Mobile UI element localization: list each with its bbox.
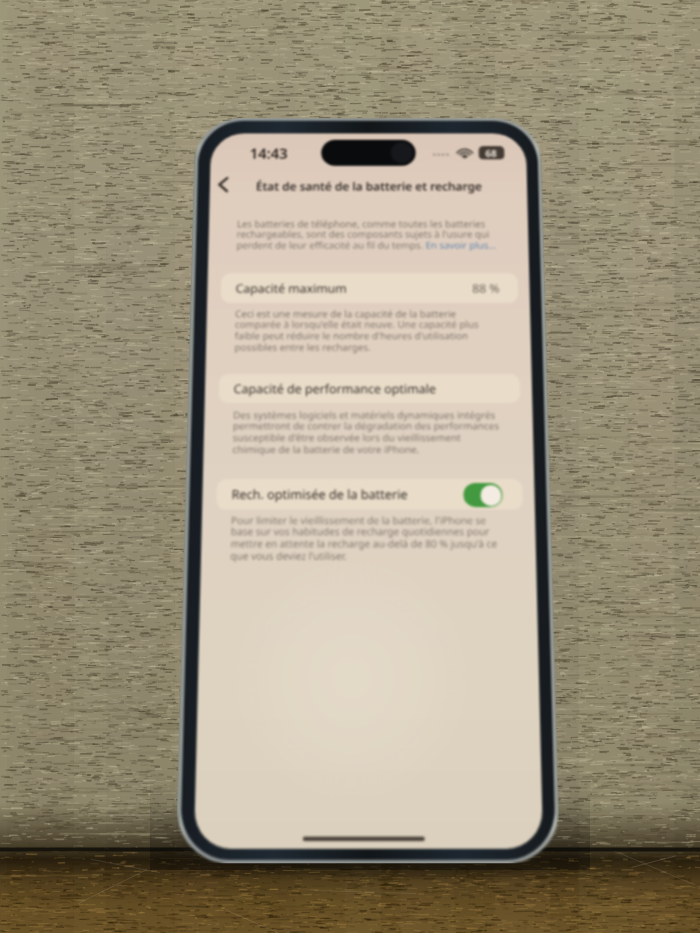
staticText: 88 %: [472, 280, 500, 296]
button[interactable]: Rech. optimisée de la batterie: [216, 479, 523, 510]
staticText: État de santé de la batterie et recharge: [256, 179, 482, 194]
staticText: Des systèmes logiciels et matériels dyna…: [232, 408, 500, 456]
staticText: 68: [485, 147, 498, 160]
button[interactable]: Rech. optimisée de la batterie: [463, 483, 503, 507]
staticText: Pour limiter le vieillissement de la bat…: [230, 513, 498, 563]
staticText: Capacité de performance optimale: [233, 381, 436, 397]
button[interactable]: Retour: [210, 172, 238, 196]
staticText: Les batteries de téléphone, comme toutes…: [236, 217, 497, 251]
staticText: Rech. optimisée de la batterie: [231, 486, 408, 503]
button[interactable]: Capacité de performance optimale: [218, 374, 520, 403]
button[interactable]: Capacité maximum: [221, 273, 518, 303]
staticText: Ceci est une mesure de la capacité de la…: [234, 307, 480, 354]
staticText: 14:43: [250, 143, 288, 162]
staticText: Capacité maximum: [235, 280, 348, 296]
